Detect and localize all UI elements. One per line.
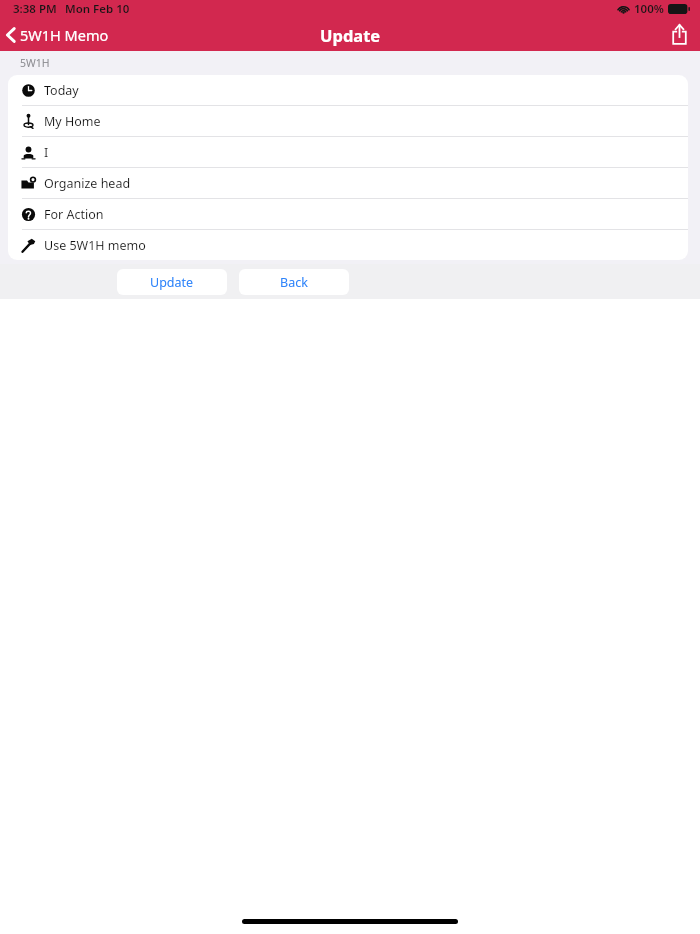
staticText: 100%: [634, 1, 664, 17]
button[interactable]: Update: [117, 269, 227, 295]
button[interactable]: Share: [659, 19, 700, 50]
button[interactable]: Use 5W1H memo: [8, 230, 688, 260]
staticText: 3:38 PM: [13, 1, 57, 17]
button[interactable]: Organize head: [8, 168, 688, 198]
staticText: For Action: [44, 206, 104, 223]
button[interactable]: 5W1H Memo: [0, 21, 119, 49]
staticText: Back: [280, 274, 308, 291]
button[interactable]: Today: [8, 75, 688, 105]
button[interactable]: My Home: [8, 106, 688, 136]
staticText: Mon Feb 10: [65, 1, 130, 17]
button[interactable]: For Action: [8, 199, 688, 229]
staticText: I: [44, 144, 49, 161]
staticText: Organize head: [44, 175, 131, 192]
button[interactable]: Back: [239, 269, 349, 295]
button[interactable]: I: [8, 137, 688, 167]
staticText: Update: [150, 274, 194, 291]
staticText: Today: [44, 82, 79, 99]
staticText: Update: [320, 24, 381, 46]
staticText: My Home: [44, 113, 101, 130]
staticText: 5W1H: [20, 56, 50, 70]
staticText: Use 5W1H memo: [44, 237, 146, 254]
staticText: 5W1H Memo: [20, 25, 109, 45]
